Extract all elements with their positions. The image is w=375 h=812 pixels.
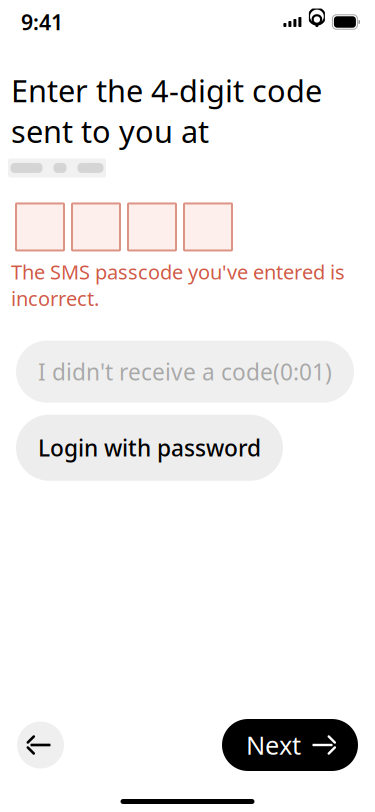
staticText: Next <box>246 728 301 762</box>
staticText: Login with password <box>38 433 261 463</box>
button[interactable]: Next <box>222 719 358 771</box>
staticText: The SMS passcode you've entered is incor… <box>11 258 345 311</box>
button[interactable]: Back <box>17 721 64 768</box>
staticText: Enter the 4-digit code sent to you at <box>11 70 322 151</box>
staticText: I didn't receive a code(0:01) <box>38 357 332 387</box>
button[interactable]: I didn't receive a code(0:01) <box>16 341 354 403</box>
button[interactable]: Login with password <box>16 415 283 481</box>
staticText: 9:41 <box>21 8 63 36</box>
